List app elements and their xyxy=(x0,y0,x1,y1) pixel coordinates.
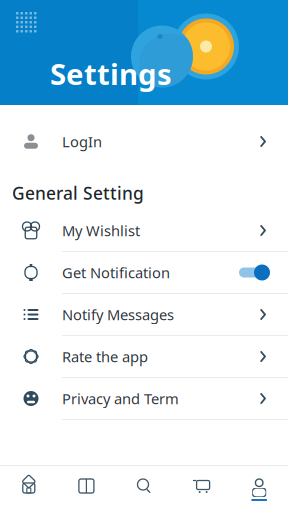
staticText: Rate the app xyxy=(62,347,148,366)
button[interactable]: LogIn xyxy=(0,121,288,162)
button[interactable]: Account xyxy=(230,466,288,512)
button[interactable]: Search xyxy=(115,466,173,512)
staticText: General Setting xyxy=(12,181,144,204)
button[interactable]: Cart xyxy=(173,466,230,512)
staticText: My Wishlist xyxy=(62,221,140,240)
staticText: LogIn xyxy=(62,132,102,151)
button[interactable]: My Wishlist xyxy=(0,210,288,251)
button[interactable]: Privacy and Term xyxy=(0,378,288,419)
button[interactable]: Home xyxy=(0,466,58,512)
button[interactable]: Catalog xyxy=(58,466,115,512)
staticText: Settings xyxy=(50,54,172,93)
staticText: Get Notification xyxy=(62,263,170,282)
button[interactable]: Rate the app xyxy=(0,336,288,377)
button[interactable]: Get Notification xyxy=(0,252,288,293)
staticText: Privacy and Term xyxy=(62,389,179,408)
button[interactable]: Notify Messages xyxy=(0,294,288,335)
staticText: Notify Messages xyxy=(62,305,174,324)
